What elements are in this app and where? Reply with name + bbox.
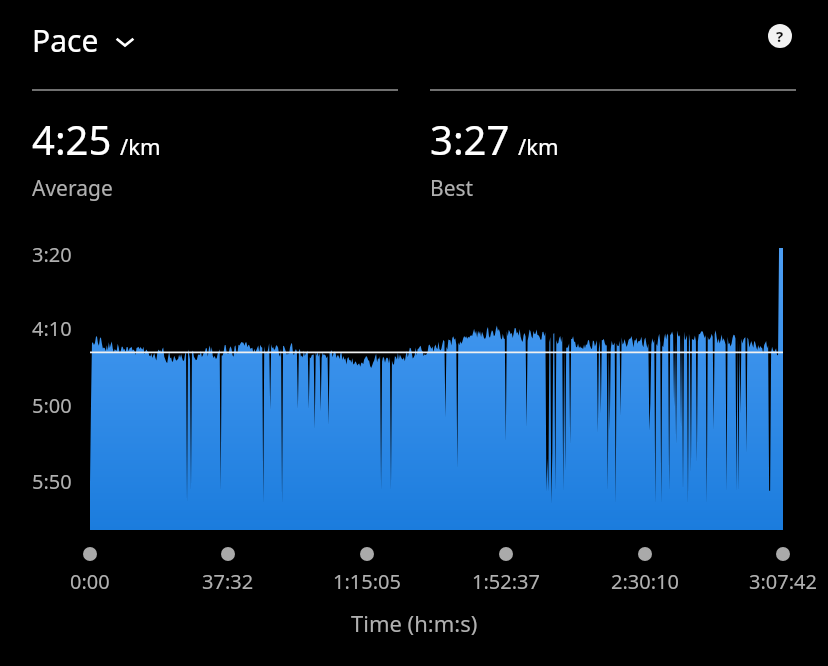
staticText: Time (h:m:s) bbox=[351, 608, 478, 638]
button[interactable]: Pace bbox=[32, 20, 139, 61]
staticText: Pace bbox=[32, 20, 99, 61]
staticText: 5:50 bbox=[32, 468, 72, 495]
staticText: 4:10 bbox=[32, 315, 72, 342]
staticText: 37:32 bbox=[202, 568, 254, 595]
staticText: Average bbox=[32, 174, 113, 203]
staticText: 2:30:10 bbox=[611, 568, 679, 595]
staticText: Best bbox=[430, 174, 474, 203]
staticText: 0:00 bbox=[70, 568, 110, 595]
staticText: 4:25 bbox=[32, 112, 112, 166]
staticText: ? bbox=[776, 26, 784, 46]
button[interactable]: Help bbox=[768, 24, 792, 48]
staticText: /km bbox=[120, 131, 161, 161]
staticText: 3:27 bbox=[430, 112, 510, 166]
staticText: 3:07:42 bbox=[749, 568, 817, 595]
staticText: 5:00 bbox=[32, 392, 72, 419]
staticText: /km bbox=[518, 131, 559, 161]
staticText: 1:15:05 bbox=[333, 568, 401, 595]
staticText: 1:52:37 bbox=[472, 568, 540, 595]
staticText: 3:20 bbox=[32, 241, 72, 268]
